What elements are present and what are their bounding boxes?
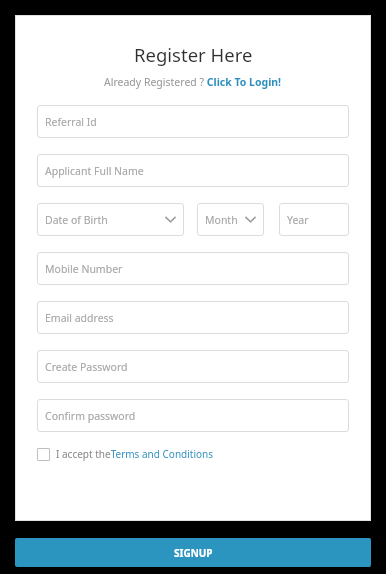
staticText: Referral Id	[45, 115, 97, 129]
staticText: Applicant Full Name	[45, 164, 144, 178]
other: Accept terms checkbox	[37, 448, 50, 461]
staticText: Confirm password	[45, 409, 136, 423]
staticText: Register Here	[134, 42, 253, 67]
staticText: Already Registered ? Click To Login!	[104, 75, 282, 89]
button[interactable]: Accept terms checkbox	[37, 447, 214, 461]
button[interactable]: Mobile Number	[37, 252, 349, 285]
staticText: SIGNUP	[174, 546, 213, 560]
button[interactable]: SIGNUP	[15, 538, 371, 567]
staticText: Month	[205, 213, 238, 227]
staticText: I accept theTerms and Conditions	[56, 447, 214, 461]
button[interactable]: Email address	[37, 301, 349, 334]
button[interactable]: Applicant Full Name	[37, 154, 349, 187]
button[interactable]: Date of Birth	[37, 203, 184, 236]
staticText: Year	[287, 213, 309, 227]
button[interactable]: Year	[279, 203, 349, 236]
staticText: Mobile Number	[45, 262, 123, 276]
staticText: Email address	[45, 311, 114, 325]
button[interactable]: Already Registered ? Click To Login!	[37, 75, 349, 89]
button[interactable]: Confirm password	[37, 399, 349, 432]
button[interactable]: Month	[197, 203, 264, 236]
staticText: Create Password	[45, 360, 128, 374]
staticText: Date of Birth	[45, 213, 108, 227]
button[interactable]: Create Password	[37, 350, 349, 383]
button[interactable]: Referral Id	[37, 105, 349, 138]
